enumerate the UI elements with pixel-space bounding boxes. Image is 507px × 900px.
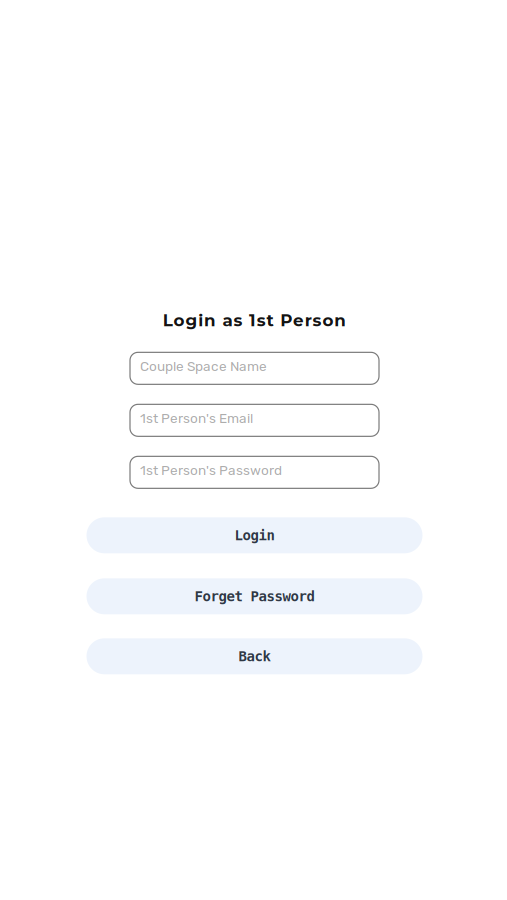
button[interactable]: Login <box>86 517 422 553</box>
button[interactable]: 1st Person's Email <box>130 404 379 436</box>
staticText: 1st Person's Password <box>140 462 282 478</box>
staticText: Couple Space Name <box>140 358 267 374</box>
button[interactable]: Couple Space Name <box>130 352 379 384</box>
staticText: Login as 1st Person <box>163 310 346 330</box>
staticText: Login <box>234 527 274 543</box>
staticText: Back <box>238 648 270 664</box>
staticText: 1st Person's Email <box>140 410 253 426</box>
button[interactable]: 1st Person's Password <box>130 456 379 488</box>
button[interactable]: Forget Password <box>86 578 422 614</box>
button[interactable]: Back <box>86 638 422 674</box>
staticText: Forget Password <box>194 588 314 604</box>
